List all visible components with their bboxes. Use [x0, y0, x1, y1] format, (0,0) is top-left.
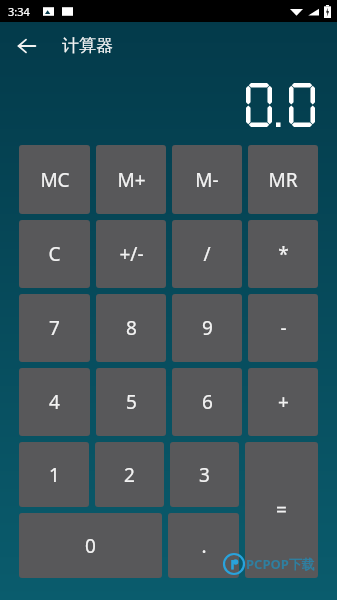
staticText: 计算器	[62, 35, 113, 56]
staticText: 1	[49, 462, 60, 488]
button[interactable]: M-	[172, 145, 242, 214]
button[interactable]: 2	[95, 442, 164, 507]
button[interactable]: MC	[19, 145, 90, 214]
button[interactable]: =	[245, 442, 318, 578]
button[interactable]: 3	[170, 442, 239, 507]
staticText: 7	[49, 315, 60, 341]
button[interactable]: +	[248, 368, 318, 436]
button[interactable]: Back	[8, 27, 46, 65]
button[interactable]: C	[19, 220, 90, 288]
staticText: 0	[85, 533, 96, 559]
staticText: 3:34	[8, 4, 30, 19]
staticText: 6	[202, 389, 213, 415]
button[interactable]: 8	[96, 294, 166, 362]
button[interactable]: 5	[96, 368, 166, 436]
staticText: +/-	[119, 241, 144, 267]
staticText: +	[278, 389, 289, 415]
staticText: -	[280, 315, 287, 341]
button[interactable]: MR	[248, 145, 318, 214]
button[interactable]: /	[172, 220, 242, 288]
button[interactable]: -	[248, 294, 318, 362]
staticText: .	[201, 533, 207, 559]
staticText: 5	[126, 389, 137, 415]
staticText: M+	[117, 167, 146, 193]
staticText: 4	[49, 389, 60, 415]
staticText: 3	[199, 462, 210, 488]
button[interactable]: 7	[19, 294, 90, 362]
button[interactable]: .	[168, 513, 239, 578]
staticText: M-	[195, 167, 219, 193]
staticText: *	[278, 241, 289, 267]
button[interactable]: 9	[172, 294, 242, 362]
staticText: =	[276, 497, 287, 523]
button[interactable]: 1	[19, 442, 89, 507]
staticText: 2	[124, 462, 135, 488]
staticText: /	[203, 241, 211, 267]
staticText: PCPOP下载	[246, 555, 315, 573]
staticText: C	[48, 241, 61, 267]
staticText: 9	[202, 315, 213, 341]
button[interactable]: *	[248, 220, 318, 288]
button[interactable]: +/-	[96, 220, 166, 288]
button[interactable]: 0	[19, 513, 162, 578]
button[interactable]: 6	[172, 368, 242, 436]
button[interactable]: M+	[96, 145, 166, 214]
staticText: MR	[268, 167, 298, 193]
staticText: 8	[126, 315, 137, 341]
button[interactable]: 4	[19, 368, 90, 436]
staticText: MC	[40, 167, 70, 193]
